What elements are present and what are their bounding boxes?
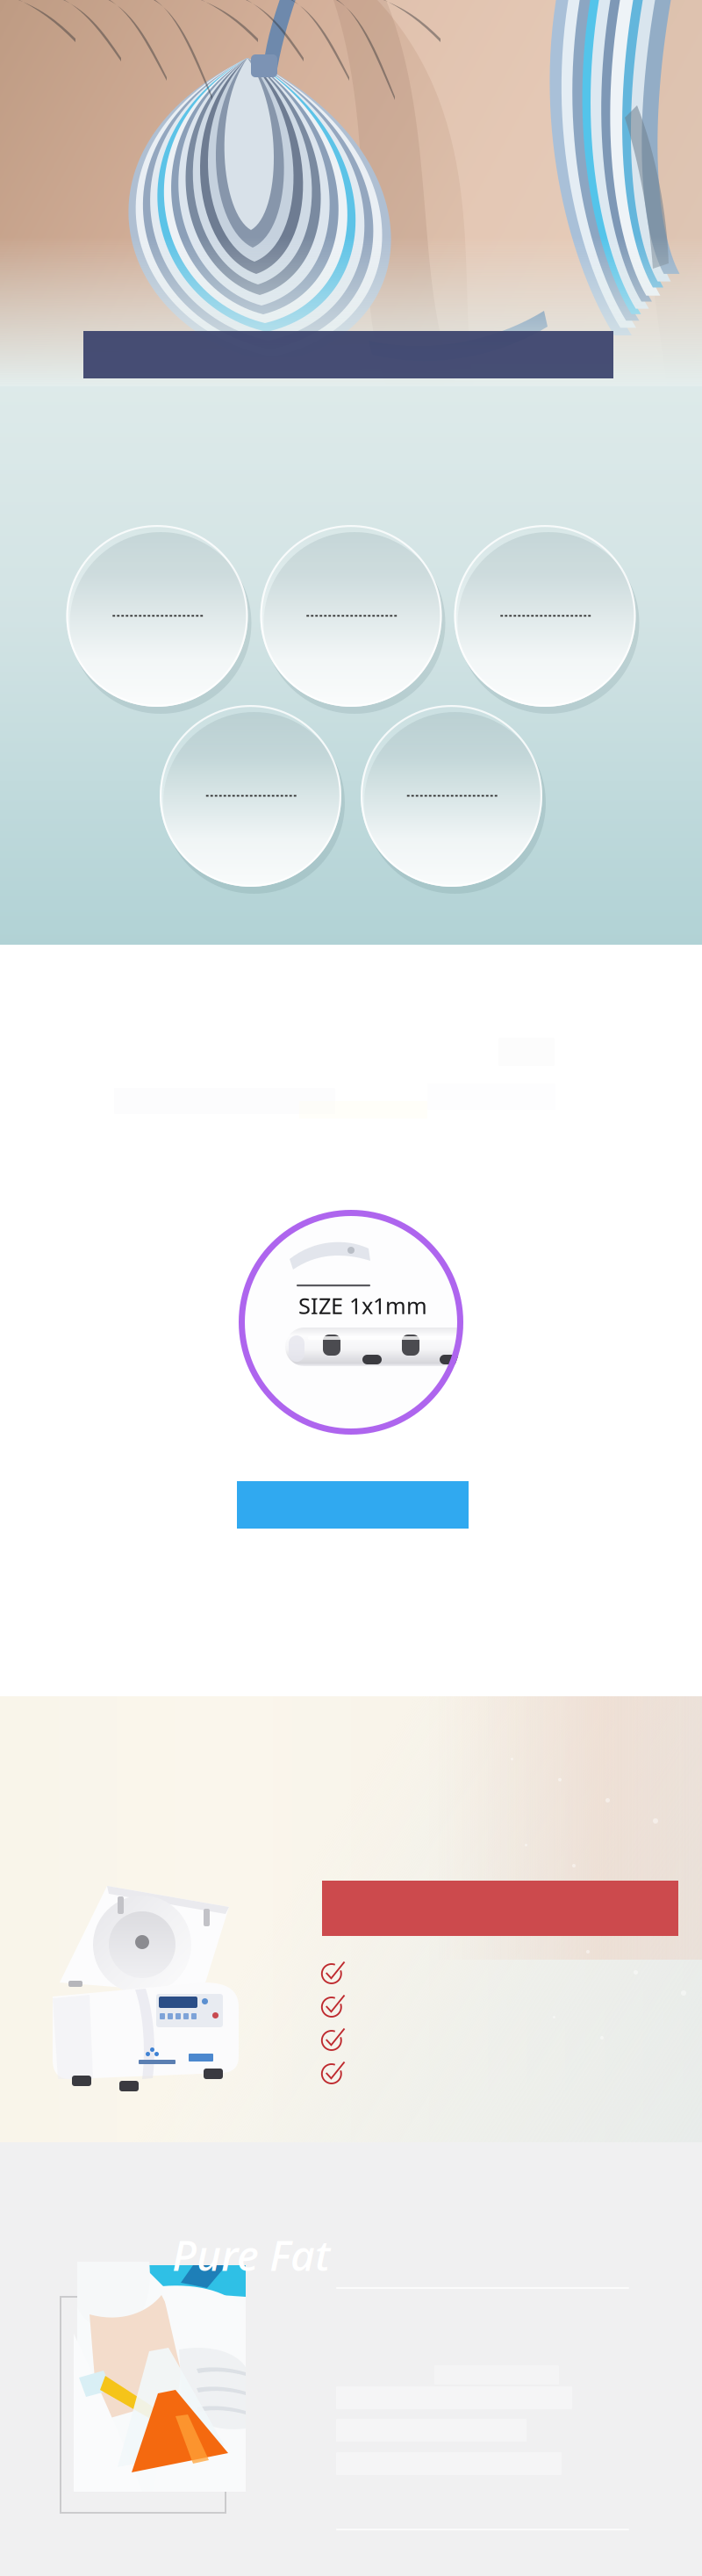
staticText: Pure Fat xyxy=(172,2227,330,2282)
button[interactable] xyxy=(237,1481,469,1529)
button[interactable] xyxy=(322,1881,678,1936)
staticText: SIZE 1x1mm xyxy=(298,1291,427,1320)
button[interactable] xyxy=(83,331,613,378)
